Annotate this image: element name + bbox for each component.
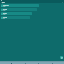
button[interactable]: Browse (23, 62, 28, 64)
button[interactable]: Radio (36, 62, 41, 64)
button[interactable]: You (50, 62, 55, 64)
staticText: 7 items (3, 18, 6, 19)
staticText: Library (2, 2, 62, 3)
button[interactable]: Downloads (1, 16, 30, 19)
staticText: Recently played (3, 5, 9, 6)
staticText: Downloads (3, 17, 7, 18)
staticText: 32 items (3, 6, 6, 7)
button[interactable]: Home (9, 62, 14, 64)
button[interactable]: Recently played (1, 4, 39, 7)
staticText: 18 items (3, 10, 6, 11)
staticText: Your mixes (3, 9, 7, 10)
staticText: Favourites (3, 13, 7, 14)
button[interactable]: Your mixes (1, 8, 37, 11)
button[interactable]: Add (60, 56, 63, 59)
staticText: 12 items (3, 14, 6, 15)
button[interactable]: Favourites (1, 12, 32, 15)
